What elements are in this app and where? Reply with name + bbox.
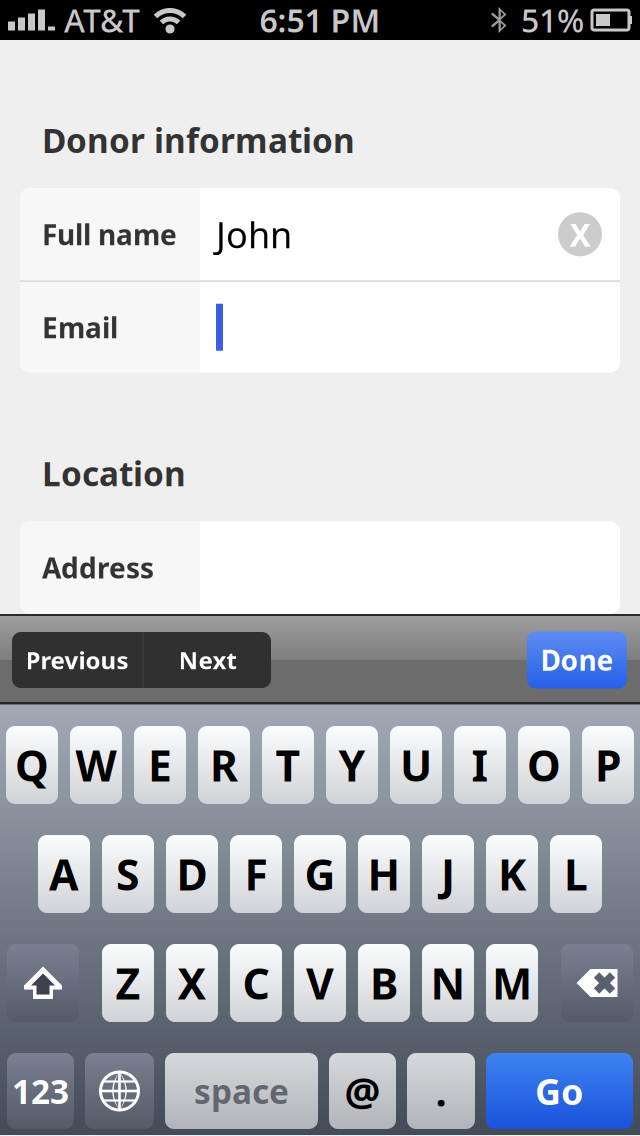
button[interactable]: P [582, 726, 634, 804]
button[interactable]: D [166, 835, 218, 913]
button[interactable]: Z [102, 944, 154, 1022]
button[interactable]: I [454, 726, 506, 804]
staticText: Next [178, 644, 236, 676]
button[interactable]: E [134, 726, 186, 804]
button[interactable]: Go [486, 1053, 633, 1129]
staticText: D [176, 846, 207, 902]
button[interactable]: W [70, 726, 122, 804]
staticText: Z [115, 955, 140, 1011]
staticText: X [569, 213, 590, 255]
staticText: R [210, 737, 238, 793]
staticText: I [471, 737, 488, 793]
button[interactable]: Shift [7, 944, 79, 1022]
button[interactable]: K [486, 835, 538, 913]
button[interactable]: Previous [12, 632, 142, 688]
staticText: P [595, 737, 621, 793]
button[interactable]: @ [329, 1053, 396, 1129]
button[interactable]: Next [144, 632, 271, 688]
button[interactable]: C [230, 944, 282, 1022]
button[interactable]: B [358, 944, 410, 1022]
staticText: AT&T [64, 0, 140, 41]
staticText: N [430, 955, 465, 1011]
staticText: @ [344, 1064, 380, 1117]
button[interactable]: L [550, 835, 602, 913]
staticText: T [275, 737, 300, 793]
staticText: F [244, 846, 267, 902]
staticText: M [492, 955, 532, 1011]
staticText: B [370, 955, 398, 1011]
button[interactable]: U [390, 726, 442, 804]
staticText: C [242, 955, 269, 1011]
staticText: 51% [521, 0, 584, 41]
button[interactable]: F [230, 835, 282, 913]
button[interactable]: H [358, 835, 410, 913]
staticText: 6:51 PM [259, 0, 380, 41]
staticText: Location [42, 451, 186, 496]
staticText: A [49, 846, 79, 902]
staticText: Previous [25, 644, 128, 676]
button[interactable]: J [422, 835, 474, 913]
button[interactable]: T [262, 726, 314, 804]
staticText: K [498, 846, 526, 902]
staticText: W [75, 737, 116, 793]
button[interactable]: N [422, 944, 474, 1022]
staticText: . [435, 1064, 446, 1117]
staticText: V [306, 955, 334, 1011]
button[interactable]: Next keyboard [85, 1053, 154, 1129]
staticText: G [304, 846, 335, 902]
button[interactable]: 123 [7, 1053, 74, 1129]
staticText: 123 [12, 1069, 69, 1113]
staticText: H [367, 846, 400, 902]
button[interactable]: S [102, 835, 154, 913]
button[interactable]: Full name [20, 188, 620, 280]
staticText: Address [42, 549, 154, 586]
staticText: John [216, 210, 292, 258]
staticText: Full name [42, 216, 177, 253]
button[interactable]: X [166, 944, 218, 1022]
button[interactable]: M [486, 944, 538, 1022]
staticText: U [400, 737, 432, 793]
button[interactable]: G [294, 835, 346, 913]
staticText: J [441, 846, 455, 902]
staticText: E [148, 737, 172, 793]
button[interactable]: A [38, 835, 90, 913]
staticText: L [564, 846, 588, 902]
button[interactable]: O [518, 726, 570, 804]
staticText: Done [540, 641, 613, 679]
button[interactable]: Done [527, 631, 627, 688]
button[interactable]: Delete [561, 944, 633, 1022]
button[interactable]: Y [326, 726, 378, 804]
staticText: space [194, 1069, 289, 1113]
button[interactable]: . [407, 1053, 475, 1129]
button[interactable]: Address [0, 521, 620, 613]
button[interactable]: V [294, 944, 346, 1022]
staticText: Y [338, 737, 365, 793]
staticText: S [116, 846, 140, 902]
button[interactable]: Q [6, 726, 58, 804]
button[interactable]: Email [20, 282, 620, 372]
staticText: X [177, 955, 206, 1011]
button[interactable]: space [165, 1053, 318, 1129]
button[interactable]: R [198, 726, 250, 804]
staticText: Go [535, 1067, 584, 1115]
staticText: Q [15, 737, 49, 793]
staticText: O [527, 737, 561, 793]
staticText: Email [42, 309, 118, 346]
staticText: Donor information [42, 118, 355, 162]
